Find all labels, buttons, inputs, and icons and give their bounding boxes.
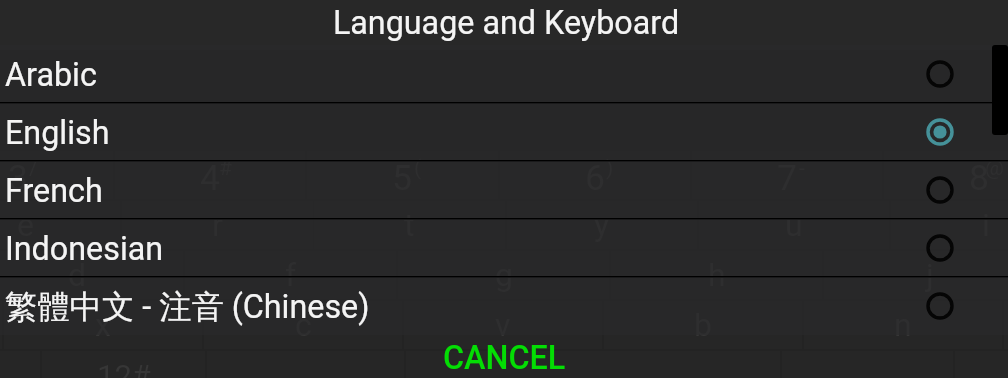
- staticText: u: [785, 206, 803, 244]
- button[interactable]: 繁體中文 - 注音 (Chinese): [0, 277, 1008, 335]
- staticText: 5: [392, 157, 412, 199]
- other: Select language: [923, 289, 957, 323]
- other: Select language: [923, 231, 957, 265]
- staticText: 6: [585, 157, 605, 199]
- staticText: ): [606, 156, 614, 181]
- staticText: i: [982, 206, 990, 244]
- staticText: j: [926, 256, 934, 294]
- staticText: English: [5, 114, 110, 152]
- staticText: 3: [8, 157, 28, 199]
- button[interactable]: English: [0, 103, 1008, 161]
- button[interactable]: French: [0, 161, 1008, 219]
- staticText: y: [594, 206, 610, 244]
- staticText: French: [5, 172, 103, 210]
- staticText: @: [985, 156, 1004, 181]
- staticText: #: [219, 156, 232, 181]
- button[interactable]: Arabic: [0, 45, 1008, 103]
- staticText: /: [29, 156, 38, 181]
- staticText: Indonesian: [5, 230, 164, 268]
- staticText: x: [95, 306, 111, 344]
- staticText: Arabic: [5, 56, 97, 94]
- staticText: g: [495, 256, 513, 294]
- staticText: d: [68, 256, 87, 294]
- staticText: 繁體中文 - 注音 (Chinese): [5, 287, 370, 328]
- staticText: r: [212, 206, 223, 244]
- staticText: Language and Keyboard: [2, 4, 1008, 42]
- other: Select language: [923, 173, 957, 207]
- staticText: h: [708, 256, 726, 294]
- other: Selected language: [923, 115, 957, 149]
- staticText: e: [17, 206, 34, 244]
- staticText: 4: [200, 157, 220, 199]
- staticText: 8: [969, 157, 989, 199]
- staticText: (: [414, 156, 422, 181]
- button[interactable]: Indonesian: [0, 219, 1008, 277]
- staticText: CANCEL: [443, 339, 566, 375]
- staticText: c: [295, 306, 312, 344]
- button[interactable]: CANCEL: [419, 334, 590, 378]
- staticText: t: [404, 206, 415, 244]
- staticText: f: [285, 256, 297, 294]
- staticText: -: [799, 156, 805, 181]
- staticText: 7: [777, 157, 797, 199]
- staticText: 12#: [97, 358, 151, 378]
- other: Select language: [923, 57, 957, 91]
